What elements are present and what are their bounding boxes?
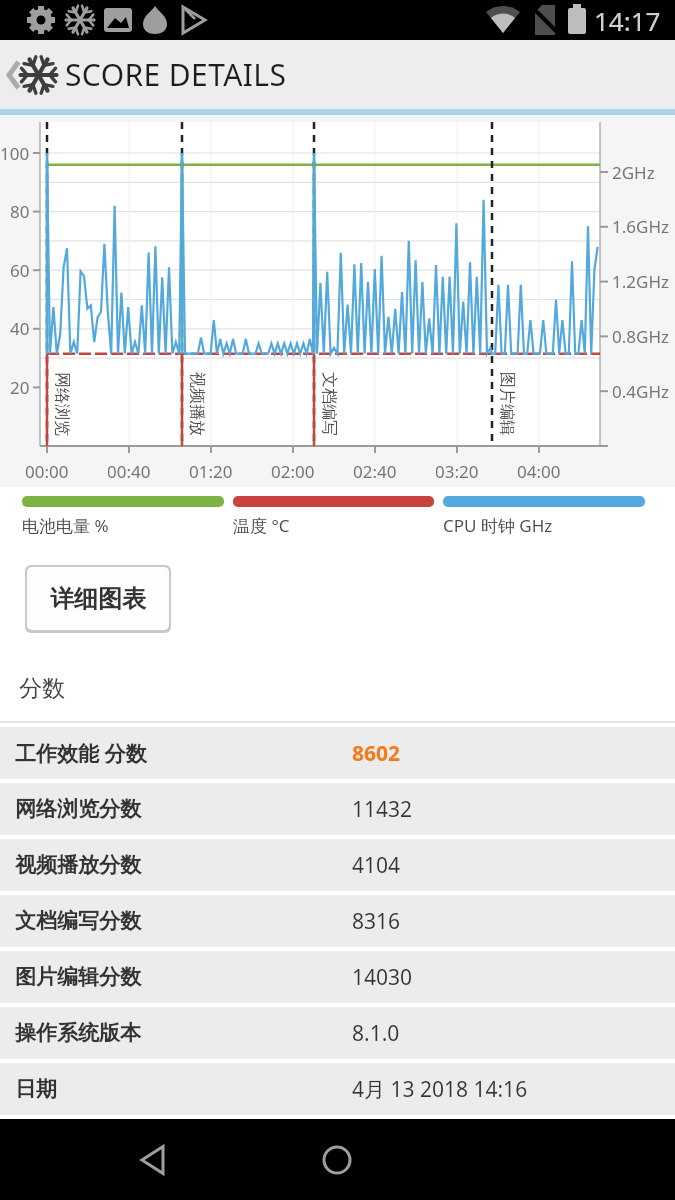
button[interactable]: 文档编写分数 <box>0 895 675 947</box>
staticText: 14030 <box>352 963 413 992</box>
button[interactable]: 图片编辑分数 <box>0 951 675 1003</box>
button[interactable]: 工作效能 分数 <box>0 727 675 779</box>
button[interactable] <box>113 1119 193 1200</box>
staticText: 8602 <box>352 739 401 768</box>
staticText: 文档编写分数 <box>15 908 141 934</box>
staticText: 4104 <box>352 851 401 880</box>
staticText: 4月 13 2018 14:16 <box>352 1075 528 1104</box>
staticText: 8316 <box>352 907 401 936</box>
staticText: 工作效能 分数 <box>15 739 147 768</box>
staticText: 日期 <box>15 1076 57 1102</box>
staticText: 操作系统版本 <box>15 1020 141 1046</box>
staticText: 11432 <box>352 795 413 824</box>
staticText: 视频播放分数 <box>15 852 141 878</box>
button[interactable]: 网络浏览分数 <box>0 783 675 835</box>
button[interactable]: 操作系统版本 <box>0 1007 675 1059</box>
staticText: 8.1.0 <box>352 1019 400 1048</box>
button[interactable] <box>0 40 60 109</box>
button[interactable]: 日期 <box>0 1063 675 1115</box>
staticText: 图片编辑分数 <box>15 964 141 990</box>
button[interactable]: 视频播放分数 <box>0 839 675 891</box>
button[interactable]: 详细图表 <box>27 567 169 630</box>
staticText: 网络浏览分数 <box>15 796 141 822</box>
button[interactable] <box>297 1119 377 1200</box>
staticText: 详细图表 <box>50 584 146 614</box>
